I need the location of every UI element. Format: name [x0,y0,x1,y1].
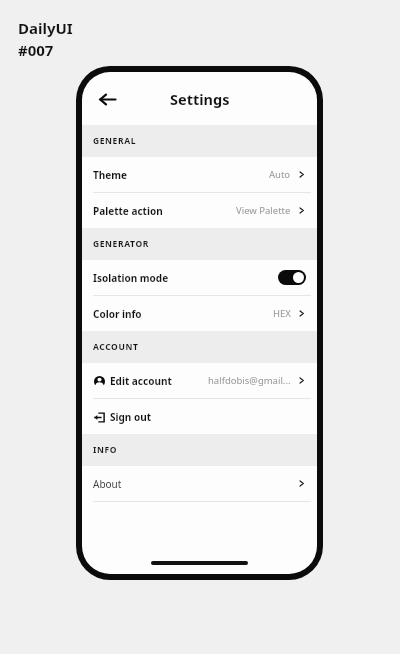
staticText: HEX [273,307,291,320]
staticText: Palette action [93,204,163,218]
staticText: View Palette [236,204,291,217]
button[interactable]: Palette action [82,193,317,228]
staticText: ACCOUNT [93,341,139,353]
staticText: INFO [93,444,118,456]
button[interactable]: Isolation mode toggle [278,270,306,285]
staticText: Sign out [110,410,152,424]
staticText: Edit account [110,374,172,388]
staticText: GENERATOR [93,238,149,250]
staticText: #007 [18,40,54,60]
button[interactable]: Edit account [82,363,317,398]
staticText: GENERAL [93,135,136,147]
staticText: halfdobis@gmail... [208,374,291,387]
staticText: About [93,477,122,491]
staticText: Auto [269,168,291,181]
button[interactable]: Sign out [82,399,317,434]
staticText: Color info [93,307,142,321]
staticText: Settings [170,89,230,109]
staticText: Theme [93,168,127,182]
button[interactable]: About [82,466,317,501]
staticText: Isolation mode [93,271,169,285]
button[interactable]: Theme [82,157,317,192]
button[interactable]: Isolation mode [82,260,317,295]
button[interactable]: Back [90,82,124,116]
staticText: DailyUI [18,18,73,38]
button[interactable]: Color info [82,296,317,331]
